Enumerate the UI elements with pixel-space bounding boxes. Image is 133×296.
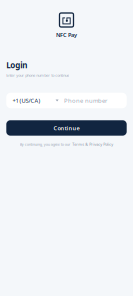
button[interactable]: Terms & Privacy Policy — [72, 142, 113, 147]
staticText: Login — [6, 60, 27, 70]
staticText: Phone number — [64, 96, 107, 104]
staticText: Continue — [53, 124, 79, 132]
button[interactable]: Continue — [6, 120, 127, 136]
staticText: Enter your phone number to continue — [6, 72, 69, 78]
staticText: By continuing, you agree to our — [20, 142, 71, 147]
button[interactable]: +1 (US/CA) — [6, 93, 64, 108]
staticText: NFC Pay — [56, 31, 77, 39]
staticText: Terms & Privacy Policy — [72, 142, 113, 147]
staticText: +1 (US/CA) — [13, 97, 41, 104]
